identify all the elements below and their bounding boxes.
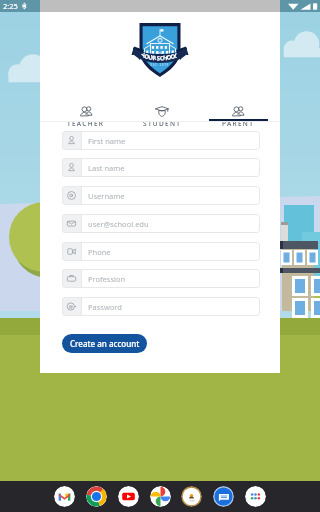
button[interactable]: PARENT bbox=[200, 88, 276, 121]
staticText: STUDENT bbox=[143, 119, 182, 128]
button[interactable]: Phone bbox=[62, 242, 260, 261]
button[interactable]: Last name bbox=[62, 158, 260, 177]
button[interactable]: Chrome bbox=[86, 486, 107, 507]
button[interactable]: Password bbox=[62, 297, 260, 316]
button[interactable]: Assistant bbox=[181, 486, 202, 507]
staticText: Username bbox=[88, 191, 125, 201]
staticText: First name bbox=[88, 136, 126, 146]
button[interactable]: First name bbox=[62, 131, 260, 150]
staticText: PARENT bbox=[222, 119, 255, 128]
staticText: Profession bbox=[88, 274, 126, 284]
staticText: TEACHER bbox=[67, 119, 105, 128]
button[interactable]: TEACHER bbox=[48, 88, 124, 121]
button[interactable]: All apps bbox=[245, 486, 266, 507]
button[interactable]: STUDENT bbox=[124, 88, 200, 121]
staticText: Create an account bbox=[70, 338, 140, 349]
staticText: Password bbox=[88, 302, 122, 312]
button[interactable]: Photos bbox=[150, 486, 171, 507]
staticText: user@school.edu bbox=[88, 219, 149, 229]
staticText: 2:25 bbox=[3, 1, 18, 11]
staticText: Phone bbox=[88, 247, 111, 257]
button[interactable]: user@school.edu bbox=[62, 214, 260, 233]
button[interactable]: YouTube bbox=[118, 486, 139, 507]
staticText: Last name bbox=[88, 163, 125, 173]
button[interactable]: Gmail bbox=[54, 486, 75, 507]
button[interactable]: Messages bbox=[213, 486, 234, 507]
button[interactable]: Profession bbox=[62, 269, 260, 288]
button[interactable]: Create an account bbox=[62, 334, 147, 353]
button[interactable]: Username bbox=[62, 186, 260, 205]
